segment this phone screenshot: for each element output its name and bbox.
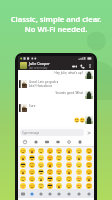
button[interactable]: Emoji — [18, 147, 27, 154]
button[interactable]: Attachment 2 — [41, 138, 52, 146]
button[interactable]: Attachment 3 — [52, 138, 63, 146]
button[interactable]: Emoji category — [45, 189, 54, 198]
button[interactable]: Emoji — [36, 154, 45, 161]
button[interactable]: Emoji — [45, 182, 54, 189]
button[interactable]: Attachment 1 — [30, 138, 41, 146]
button[interactable]: Emoji — [84, 175, 94, 182]
button[interactable]: Emoji — [64, 182, 74, 189]
staticText: Good. Lets go grab a bite? How about Chi… — [29, 80, 60, 88]
button[interactable]: Emoji — [36, 182, 45, 189]
button[interactable]: Emoji — [74, 147, 84, 154]
button[interactable]: Emoji — [84, 168, 94, 175]
button[interactable]: Emoji — [27, 161, 36, 168]
button[interactable]: Emoji category — [36, 189, 45, 198]
button[interactable]: Emoji — [45, 147, 54, 154]
button[interactable]: Emoji — [36, 147, 45, 154]
button[interactable]: Emoji — [54, 161, 64, 168]
button[interactable]: Emoji — [45, 161, 54, 168]
staticText: last seen today — [29, 66, 48, 70]
button[interactable]: Emoji — [18, 161, 27, 168]
button[interactable]: Emoji — [54, 154, 64, 161]
button[interactable]: Emoji — [74, 175, 84, 182]
button[interactable]: Emoji — [64, 168, 74, 175]
button[interactable]: Emoji — [74, 161, 84, 168]
button[interactable]: Julie Cooper — [18, 61, 94, 70]
button[interactable]: Emoji — [27, 168, 36, 175]
button[interactable]: Emoji — [74, 154, 84, 161]
button[interactable]: Emoji — [74, 168, 84, 175]
button[interactable]: Emoji — [36, 168, 45, 175]
button[interactable]: Type message — [20, 129, 84, 136]
staticText: Type message — [22, 131, 40, 135]
button[interactable]: Emoji category — [54, 189, 64, 198]
button[interactable]: Emoji category — [27, 189, 36, 198]
button[interactable]: Emoji — [18, 168, 27, 175]
button[interactable]: Emoji — [18, 154, 27, 161]
staticText: Sure — [29, 104, 60, 108]
button[interactable]: Emoji — [18, 175, 27, 182]
button[interactable]: Emoji — [45, 168, 54, 175]
button[interactable]: Emoji — [74, 182, 84, 189]
button[interactable]: Emoji — [54, 168, 64, 175]
button[interactable]: Attachment 4 — [63, 138, 74, 146]
button[interactable]: Attachment 5 — [74, 138, 85, 146]
button[interactable]: Emoji — [54, 147, 64, 154]
button[interactable]: Send — [86, 130, 92, 136]
button[interactable]: Emoji category — [74, 189, 84, 198]
button[interactable]: Emoji category — [64, 189, 74, 198]
button[interactable]: Emoji — [36, 175, 45, 182]
button[interactable]: Emoji — [45, 175, 54, 182]
button[interactable]: Call — [79, 63, 85, 69]
button[interactable]: Emoji — [54, 182, 64, 189]
button[interactable]: Emoji — [64, 161, 74, 168]
button[interactable]: Emoji — [84, 154, 94, 161]
button[interactable]: Emoji — [54, 175, 64, 182]
button[interactable]: Emoji — [64, 147, 74, 154]
button[interactable]: Attachment 0 — [19, 138, 30, 146]
staticText: Sounds good. What time and where? — [52, 91, 83, 95]
button[interactable]: Emoji — [18, 182, 27, 189]
staticText: Hey Julie, what's up? — [52, 71, 83, 75]
button[interactable]: Emoji — [84, 161, 94, 168]
button[interactable]: Emoji — [84, 147, 94, 154]
button[interactable]: Emoji — [45, 154, 54, 161]
button[interactable]: Emoji — [84, 182, 94, 189]
button[interactable]: Emoji — [27, 182, 36, 189]
staticText: Julie Cooper — [29, 61, 50, 66]
button[interactable]: Video call — [71, 63, 77, 69]
button[interactable]: Emoji — [27, 147, 36, 154]
staticText: Classic, simple and clear. No Wi-Fi need… — [0, 14, 112, 34]
button[interactable]: More options — [87, 63, 92, 68]
button[interactable]: Emoji — [27, 175, 36, 182]
button[interactable]: Emoji — [36, 161, 45, 168]
button[interactable]: Emoji category — [18, 189, 27, 198]
button[interactable]: Emoji — [27, 154, 36, 161]
button[interactable]: Emoji — [64, 175, 74, 182]
button[interactable]: Emoji category — [84, 189, 94, 198]
button[interactable]: Emoji — [64, 154, 74, 161]
